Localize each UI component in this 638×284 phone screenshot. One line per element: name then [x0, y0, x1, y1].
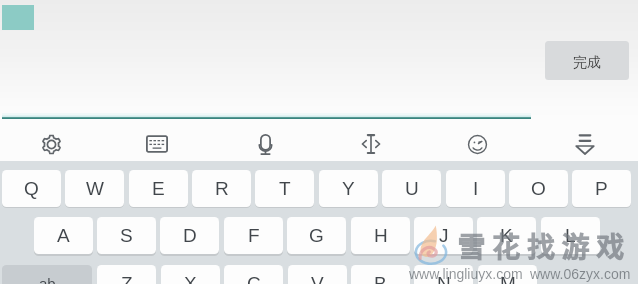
- staticText: www.lingliuyx.com: [409, 266, 523, 282]
- staticText: E: [152, 178, 165, 199]
- staticText: I: [473, 178, 479, 199]
- button[interactable]: 完成: [545, 41, 629, 80]
- staticText: N: [437, 273, 451, 284]
- button[interactable]: Voice input: [244, 123, 286, 165]
- button[interactable]: J: [414, 217, 473, 254]
- button[interactable]: I: [446, 170, 505, 207]
- staticText: www.06zyx.com: [530, 266, 631, 282]
- button[interactable]: R: [192, 170, 251, 207]
- button[interactable]: T: [255, 170, 314, 207]
- staticText: F: [248, 225, 260, 246]
- staticText: P: [595, 178, 608, 199]
- staticText: R: [215, 178, 229, 199]
- button[interactable]: A: [34, 217, 93, 254]
- staticText: B: [374, 273, 387, 284]
- button[interactable]: Y: [319, 170, 378, 207]
- button[interactable]: Q: [2, 170, 61, 207]
- button[interactable]: N: [414, 265, 473, 284]
- button[interactable]: Settings: [30, 123, 72, 165]
- staticText: L: [565, 225, 576, 246]
- button[interactable]: D: [160, 217, 219, 254]
- staticText: Y: [342, 178, 355, 199]
- staticText: Z: [121, 273, 133, 284]
- button[interactable]: B: [351, 265, 410, 284]
- staticText: G: [309, 225, 324, 246]
- button[interactable]: S: [97, 217, 156, 254]
- button[interactable]: H: [351, 217, 410, 254]
- button[interactable]: Z: [97, 265, 156, 284]
- button[interactable]: L: [541, 217, 600, 254]
- staticText: X: [184, 273, 197, 284]
- button[interactable]: G: [287, 217, 346, 254]
- staticText: D: [183, 225, 197, 246]
- button[interactable]: Move cursor: [350, 123, 392, 165]
- button[interactable]: P: [572, 170, 631, 207]
- staticText: O: [531, 178, 546, 199]
- button[interactable]: Emoji: [456, 123, 498, 165]
- staticText: U: [405, 178, 419, 199]
- staticText: ab: [39, 275, 56, 284]
- button[interactable]: M: [478, 265, 537, 284]
- staticText: 完成: [573, 54, 601, 72]
- staticText: M: [500, 273, 516, 284]
- button[interactable]: E: [129, 170, 188, 207]
- button[interactable]: K: [477, 217, 536, 254]
- button[interactable]: O: [509, 170, 568, 207]
- button[interactable]: ab: [2, 265, 92, 284]
- staticText: V: [311, 273, 324, 284]
- staticText: W: [86, 178, 104, 199]
- button[interactable]: X: [161, 265, 220, 284]
- staticText: A: [57, 225, 70, 246]
- button[interactable]: Hide keyboard: [564, 123, 606, 165]
- staticText: Q: [24, 178, 39, 199]
- staticText: K: [500, 225, 513, 246]
- staticText: S: [120, 225, 133, 246]
- button[interactable]: W: [65, 170, 124, 207]
- button[interactable]: F: [224, 217, 283, 254]
- staticText: 雪花找游戏: [457, 226, 631, 267]
- staticText: H: [374, 225, 388, 246]
- staticText: C: [247, 273, 261, 284]
- staticText: J: [439, 225, 449, 246]
- staticText: T: [279, 178, 291, 199]
- button[interactable]: Keyboard layout: [136, 123, 178, 165]
- button[interactable]: U: [382, 170, 441, 207]
- button[interactable]: V: [288, 265, 347, 284]
- button[interactable]: C: [224, 265, 283, 284]
